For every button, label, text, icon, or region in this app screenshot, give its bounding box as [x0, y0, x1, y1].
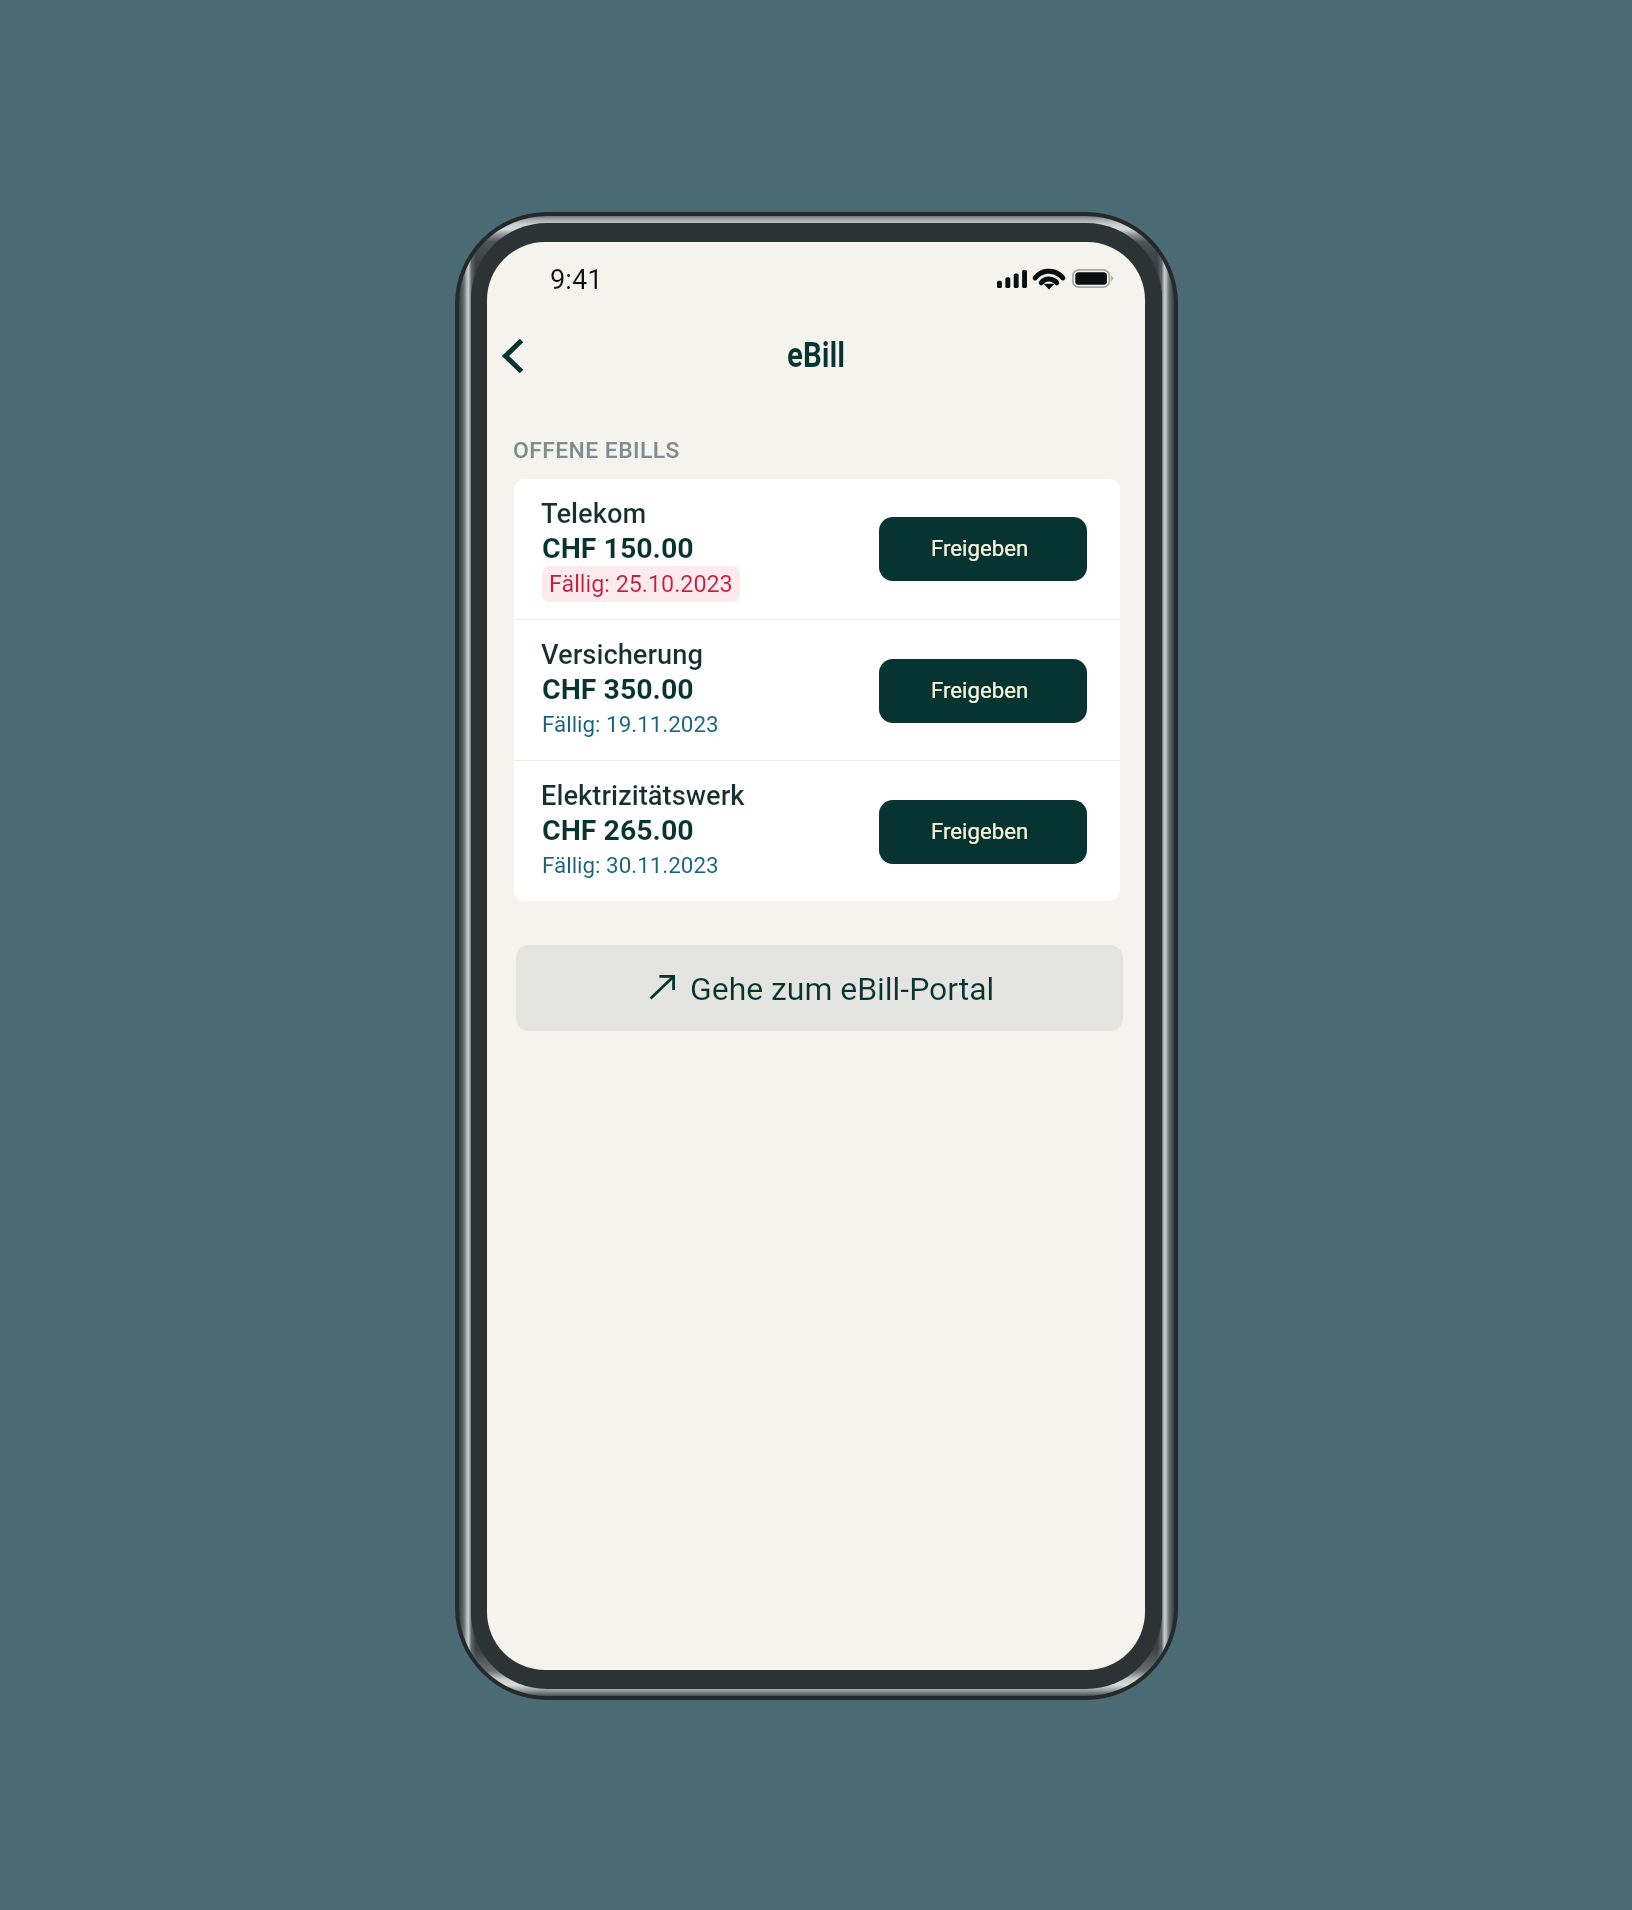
staticText: CHF 350.00 [542, 673, 694, 706]
button[interactable]: Freigeben [879, 517, 1087, 581]
button[interactable]: Freigeben [879, 659, 1087, 723]
button[interactable] [516, 945, 1123, 1031]
button[interactable] [514, 760, 1120, 901]
staticText: eBill [787, 334, 845, 375]
staticText: Versicherung [541, 639, 703, 671]
staticText: Fällig: 30.11.2023 [542, 852, 719, 878]
button[interactable] [514, 479, 1120, 619]
staticText: Fällig: 25.10.2023 [549, 570, 733, 597]
staticText: 9:41 [550, 263, 603, 296]
button[interactable]: Freigeben [879, 800, 1087, 864]
button[interactable]: Back [487, 324, 543, 388]
staticText: Elektrizitätswerk [541, 780, 745, 812]
staticText: Freigeben [931, 818, 1029, 844]
button[interactable] [514, 619, 1120, 760]
staticText: Gehe zum eBill-Portal [690, 970, 995, 1007]
staticText: Freigeben [931, 677, 1029, 703]
staticText: Telekom [541, 498, 647, 530]
staticText: CHF 265.00 [542, 814, 694, 847]
staticText: Freigeben [931, 535, 1029, 561]
staticText: OFFENE EBILLS [513, 437, 680, 464]
staticText: Fällig: 19.11.2023 [542, 711, 719, 737]
staticText: CHF 150.00 [542, 532, 694, 565]
